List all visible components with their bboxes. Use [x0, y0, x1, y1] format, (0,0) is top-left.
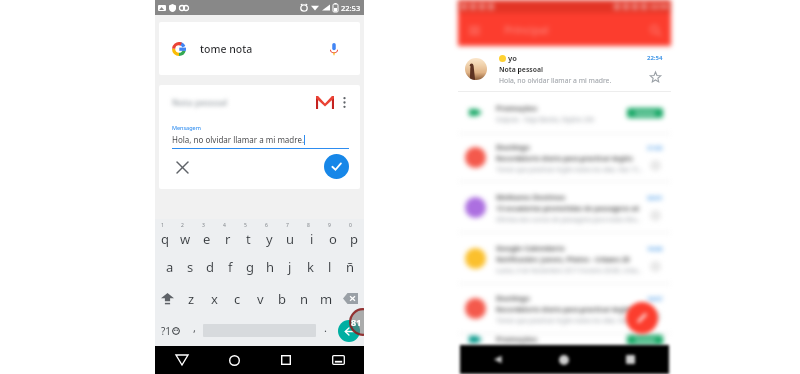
button[interactable]: Shift — [155, 283, 180, 314]
button[interactable]: Symbols — [155, 315, 185, 346]
button[interactable]: Home — [208, 346, 260, 374]
button[interactable]: Recents — [260, 346, 312, 374]
button[interactable]: Backspace — [337, 283, 364, 314]
staticText: i — [310, 230, 314, 248]
staticText: m — [320, 290, 333, 308]
button[interactable]: 0 — [343, 221, 364, 251]
staticText: w — [180, 230, 191, 248]
button[interactable]: b — [271, 283, 293, 314]
button[interactable]: 3 — [196, 221, 217, 251]
button[interactable]: 9 — [322, 221, 343, 251]
button[interactable]: Promoções — [458, 334, 671, 345]
staticText: l — [328, 258, 332, 276]
button[interactable]: z — [180, 283, 203, 314]
staticText: Recordatorio diario para practicar inglé… — [496, 305, 633, 314]
button[interactable]: Compose — [626, 302, 658, 334]
staticText: Assinar — [635, 336, 656, 344]
button[interactable]: Back — [155, 346, 208, 374]
staticText: f — [228, 258, 233, 276]
button[interactable]: , — [185, 315, 203, 346]
staticText: x — [211, 290, 218, 308]
staticText: Assinar — [635, 109, 656, 117]
staticText: Nota pessoal — [499, 65, 544, 74]
staticText: 22:53 — [341, 3, 361, 13]
staticText: Hola, no olvidar llamar a mi madre. — [172, 134, 305, 145]
button[interactable]: More options — [339, 94, 349, 110]
staticText: d — [206, 258, 214, 276]
button[interactable]: h — [260, 252, 280, 282]
staticText: yo — [508, 53, 517, 63]
button[interactable]: f — [220, 252, 240, 282]
button[interactable]: tome nota — [159, 22, 360, 75]
staticText: 9 — [328, 222, 331, 229]
button[interactable]: Confirm — [324, 154, 349, 179]
button[interactable]: c — [226, 283, 249, 314]
button[interactable]: yo — [458, 46, 671, 91]
staticText: 22:54 — [650, 2, 668, 12]
staticText: 3 — [202, 222, 205, 229]
button[interactable]: Star — [649, 71, 662, 84]
button[interactable]: v — [249, 283, 271, 314]
button[interactable]: Enter — [338, 320, 360, 342]
button[interactable]: a — [159, 252, 180, 282]
staticText: . — [324, 320, 327, 335]
button[interactable]: 7 — [280, 221, 301, 251]
button[interactable]: 6 — [259, 221, 280, 251]
staticText: Principal — [504, 22, 549, 37]
button[interactable]: m — [315, 283, 337, 314]
button[interactable]: 5 — [238, 221, 259, 251]
staticText: 19:00 — [647, 245, 663, 253]
staticText: Recordatorio diario para practicar inglé… — [496, 154, 633, 163]
staticText: ñ — [346, 258, 355, 276]
staticText: Hola, no olvidar llamar a mi madre. — [499, 76, 612, 85]
button[interactable]: Duolingo — [458, 284, 671, 333]
button[interactable]: Menu — [466, 22, 482, 38]
button[interactable]: Promoções — [458, 92, 671, 133]
button[interactable]: Google Calendario — [458, 233, 671, 283]
button[interactable]: Back — [466, 345, 531, 374]
staticText: e — [203, 230, 211, 248]
staticText: 18:07 — [647, 295, 663, 303]
staticText: Golpola - Viaja Barata, Skyline 24h — [496, 115, 595, 123]
staticText: p — [350, 230, 358, 248]
staticText: 20:01 — [647, 194, 663, 202]
button[interactable]: n — [293, 283, 315, 314]
button[interactable]: 8 — [301, 221, 322, 251]
button[interactable]: l — [320, 252, 340, 282]
button[interactable]: 1 — [155, 221, 175, 251]
button[interactable]: ñ — [340, 252, 360, 282]
button[interactable]: Recents — [597, 345, 663, 374]
staticText: r — [225, 230, 231, 248]
button[interactable]: s — [180, 252, 200, 282]
staticText: 81 — [351, 316, 362, 328]
staticText: Melhores Destinos — [496, 192, 566, 202]
button[interactable]: . — [316, 315, 334, 346]
staticText: tome nota — [200, 42, 253, 56]
staticText: Duolingo — [496, 142, 530, 152]
button[interactable]: Duolingo — [458, 134, 671, 181]
button[interactable]: 4 — [217, 221, 238, 251]
staticText: c — [234, 290, 241, 308]
button[interactable]: 2 — [175, 221, 196, 251]
staticText: t — [246, 230, 251, 248]
button[interactable]: d — [200, 252, 220, 282]
staticText: Tienes que practicar inglés todos los dí… — [496, 316, 643, 324]
button[interactable]: Home — [531, 345, 597, 374]
staticText: v — [257, 290, 264, 308]
button[interactable]: g — [240, 252, 260, 282]
button[interactable]: Cancel — [172, 157, 192, 177]
button[interactable]: k — [300, 252, 320, 282]
staticText: ?1 — [161, 324, 172, 338]
staticText: 8 — [307, 222, 310, 229]
staticText: h — [266, 258, 275, 276]
staticText: Mensagem — [172, 124, 201, 131]
staticText: a — [166, 258, 174, 276]
staticText: u — [286, 230, 295, 248]
staticText: Tienes que practicar inglés todos los dí… — [496, 165, 643, 173]
button[interactable]: Search — [647, 22, 663, 38]
button[interactable]: j — [280, 252, 300, 282]
button[interactable]: x — [203, 283, 226, 314]
button[interactable]: Keyboard — [312, 346, 364, 374]
button[interactable]: Melhores Destinos — [458, 182, 671, 232]
